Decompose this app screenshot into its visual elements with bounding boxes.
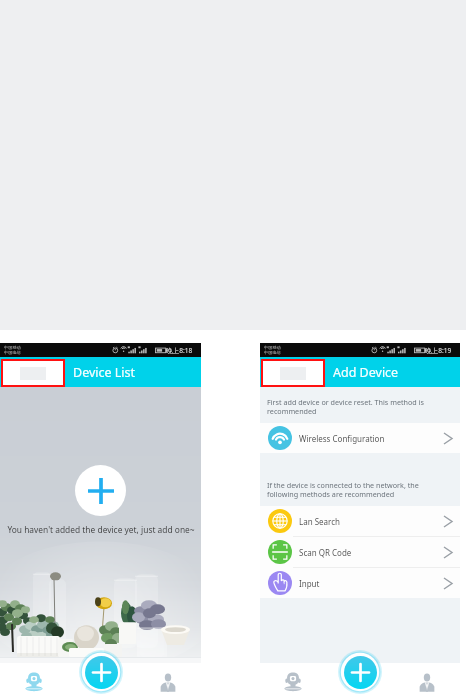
button[interactable]: Lan Search [260, 506, 460, 536]
button[interactable]: Input [260, 568, 460, 598]
staticText: Add Device [333, 364, 399, 381]
staticText: You haven't added the device yet, just a… [7, 524, 195, 535]
staticText: Wireless Configuration [299, 433, 385, 444]
button[interactable]: Wireless Configuration [260, 423, 460, 453]
button[interactable]: Add device [85, 656, 118, 689]
button[interactable]: Camera devices [260, 663, 326, 699]
staticText: 中国移动 [4, 345, 21, 350]
button[interactable]: Scan QR Code [260, 537, 460, 567]
button[interactable]: Profile [393, 663, 460, 699]
staticText: 中国电信 [264, 350, 281, 355]
button[interactable]: Profile [134, 663, 201, 699]
staticText: Scan QR Code [299, 547, 352, 558]
staticText: 中国电信 [4, 350, 21, 355]
staticText: 中国移动 [264, 345, 281, 350]
staticText: First add device or device reset. This m… [267, 397, 424, 417]
button[interactable]: Add device [344, 656, 377, 689]
staticText: If the device is connected to the networ… [267, 480, 419, 500]
staticText: Device List [73, 364, 136, 381]
staticText: 晚上8:19 [425, 346, 452, 355]
button[interactable]: Add device [75, 465, 126, 516]
staticText: Lan Search [299, 516, 341, 527]
staticText: 晚上8:18 [166, 346, 193, 355]
staticText: Input [299, 578, 320, 589]
button[interactable]: Camera devices [0, 663, 67, 699]
